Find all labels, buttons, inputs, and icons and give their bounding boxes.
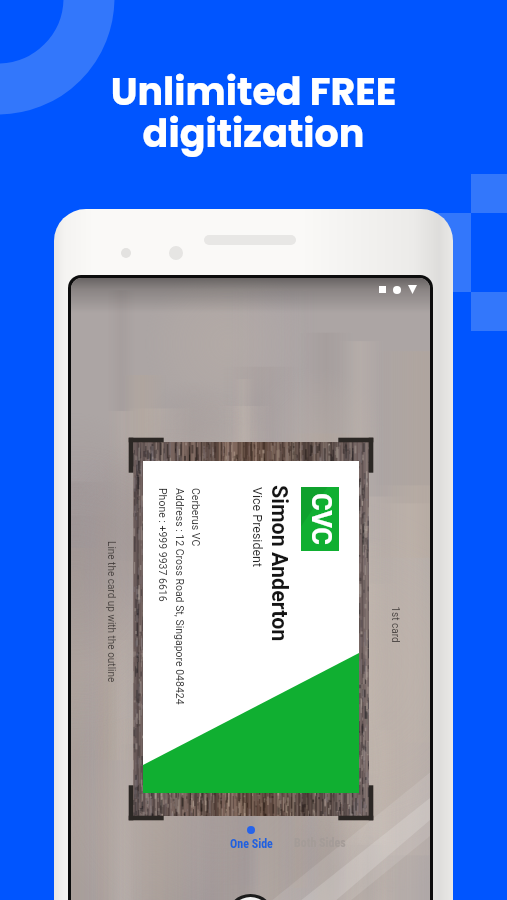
button[interactable]: Both Sides (285, 836, 355, 850)
button[interactable]: Capture (229, 897, 272, 900)
staticText: Both Sides (294, 836, 346, 850)
staticText: CVC (305, 493, 337, 545)
button[interactable]: One Side (223, 826, 279, 851)
staticText: One Side (230, 837, 273, 851)
staticText: 1st card (388, 606, 400, 643)
staticText: Vice President (250, 487, 265, 568)
staticText: Unlimited FREE digitization (0, 65, 507, 160)
staticText: Simon Anderton (267, 485, 292, 642)
staticText: Cerberus VC Address : 12 Cross Road St, … (156, 488, 202, 705)
staticText: Line the card up with the outline (105, 541, 117, 683)
